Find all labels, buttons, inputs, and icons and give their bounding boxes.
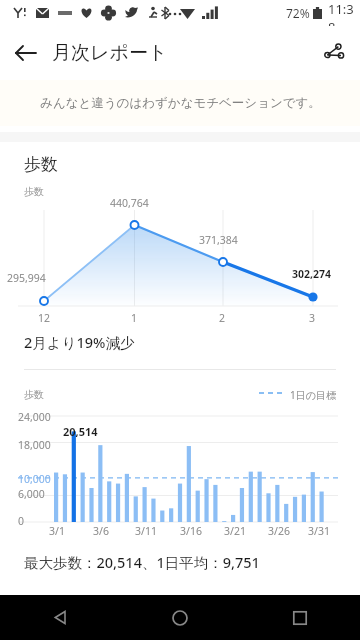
staticText: 3/21 <box>224 524 246 538</box>
staticText: 歩数 <box>24 154 58 175</box>
staticText: 最大歩数：20,514、1日平均：9,751 <box>24 552 260 572</box>
staticText: 月次レポート <box>52 41 168 65</box>
staticText: 歩数 <box>24 388 44 401</box>
staticText: 12 <box>38 311 51 325</box>
staticText: みんなと違うのはわずかなモチベーションです。 <box>40 95 321 111</box>
staticText: 3/16 <box>180 524 202 538</box>
staticText: 3 <box>309 311 316 325</box>
staticText: 11:38 <box>328 0 354 26</box>
staticText: 302,274 <box>292 267 332 281</box>
staticText: 3/26 <box>268 524 290 538</box>
staticText: 0 <box>18 514 25 528</box>
staticText: 3/11 <box>135 524 157 538</box>
staticText: 24,000 <box>18 410 51 424</box>
button[interactable]: Share <box>308 27 360 79</box>
button[interactable]: Back <box>0 595 120 640</box>
staticText: 1日の目標 <box>290 388 336 402</box>
staticText: 1 <box>131 311 138 325</box>
staticText: 3/31 <box>308 524 330 538</box>
staticText: 72% <box>286 5 310 21</box>
staticText: 18,000 <box>18 438 51 452</box>
staticText: 歩数 <box>24 185 44 198</box>
staticText: 3/6 <box>93 524 109 538</box>
staticText: 295,994 <box>7 271 46 285</box>
button[interactable]: Back <box>0 27 52 79</box>
staticText: 3/1 <box>49 524 65 538</box>
staticText: 2月より19%減少 <box>24 332 135 352</box>
staticText: 440,764 <box>110 196 149 210</box>
staticText: 371,384 <box>199 233 238 247</box>
staticText: 10,000 <box>18 472 51 486</box>
button[interactable]: Home <box>120 595 240 640</box>
staticText: 2 <box>219 311 226 325</box>
staticText: 6,000 <box>18 487 45 501</box>
button[interactable]: Recent apps <box>240 595 360 640</box>
staticText: 20,514 <box>63 424 98 439</box>
